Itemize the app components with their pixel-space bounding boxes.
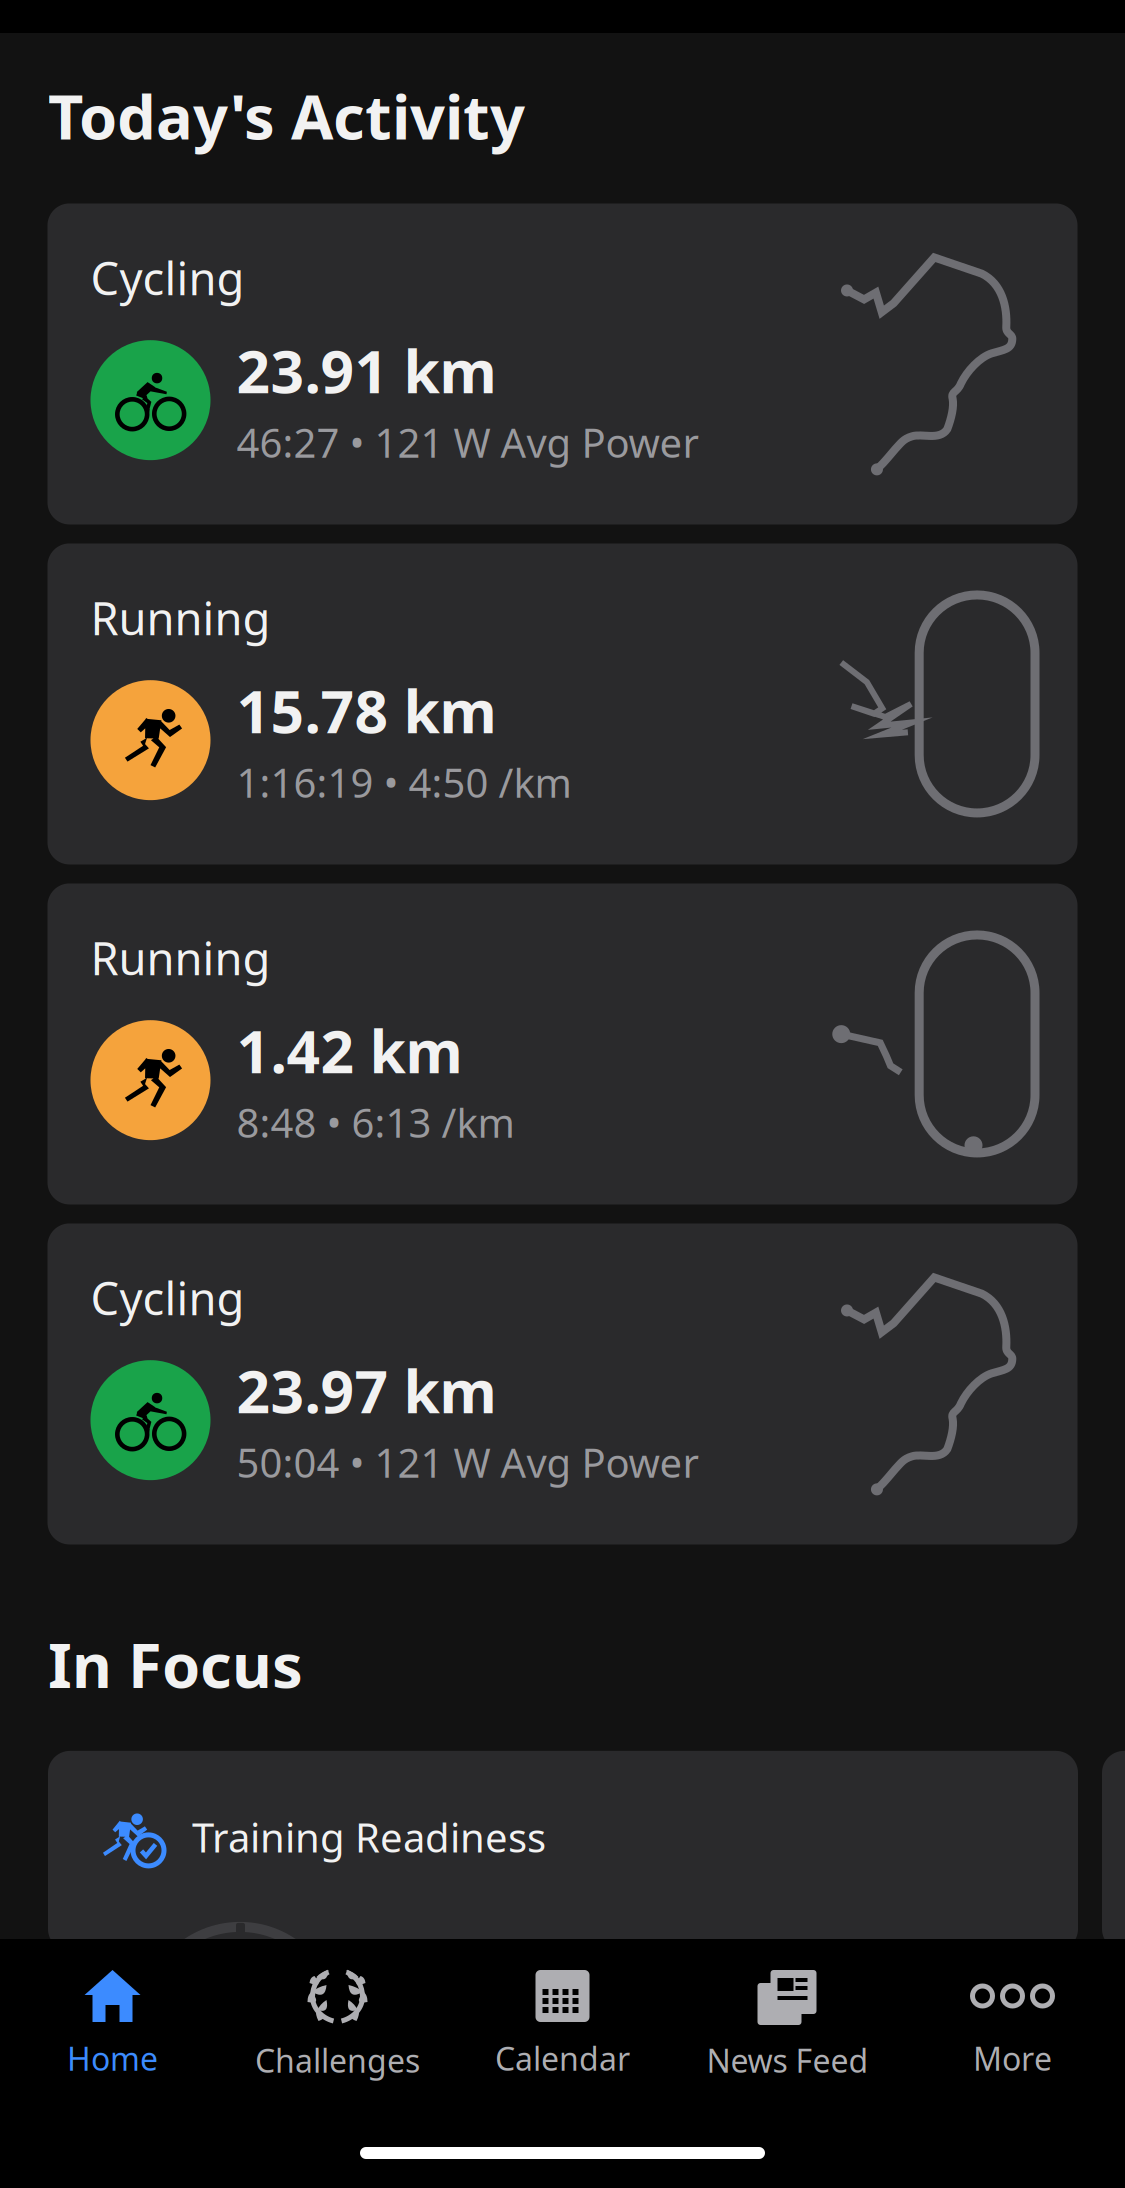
staticText: Challenges bbox=[255, 2039, 420, 2081]
staticText: Cycling bbox=[90, 1267, 244, 1328]
staticText: News Feed bbox=[706, 2039, 868, 2081]
staticText: 23.97 km bbox=[236, 1352, 496, 1429]
staticText: Training Readiness bbox=[192, 1810, 546, 1863]
staticText: 46:27 • 121 W Avg Power bbox=[236, 416, 699, 469]
button[interactable]: Cycling bbox=[47, 1223, 1077, 1544]
staticText: 1:16:19 • 4:50 /km bbox=[236, 756, 571, 809]
staticText: Home bbox=[67, 2037, 158, 2079]
button[interactable]: Challenges bbox=[225, 1939, 450, 2084]
staticText: Calendar bbox=[495, 2037, 630, 2079]
button[interactable]: News Feed bbox=[675, 1939, 900, 2084]
button[interactable]: Running bbox=[47, 543, 1077, 864]
staticText: Cycling bbox=[90, 247, 244, 308]
staticText: In Focus bbox=[48, 1623, 303, 1705]
staticText: Running bbox=[90, 587, 270, 648]
staticText: 8:48 • 6:13 /km bbox=[236, 1096, 514, 1149]
staticText: More bbox=[973, 2037, 1052, 2079]
staticText: Today's Activity bbox=[48, 75, 525, 156]
button[interactable]: Home bbox=[0, 1939, 225, 2084]
staticText: 15.78 km bbox=[236, 672, 496, 749]
button[interactable]: Training Readiness bbox=[48, 1751, 1078, 1951]
staticText: Running bbox=[90, 927, 270, 988]
staticText: 50:04 • 121 W Avg Power bbox=[236, 1436, 699, 1489]
button[interactable]: Calendar bbox=[450, 1939, 675, 2084]
staticText: 1.42 km bbox=[236, 1012, 462, 1089]
button[interactable]: More bbox=[900, 1939, 1125, 2084]
button[interactable]: Running bbox=[47, 883, 1077, 1204]
staticText: 23.91 km bbox=[236, 332, 496, 409]
button[interactable]: Cycling bbox=[47, 203, 1077, 524]
